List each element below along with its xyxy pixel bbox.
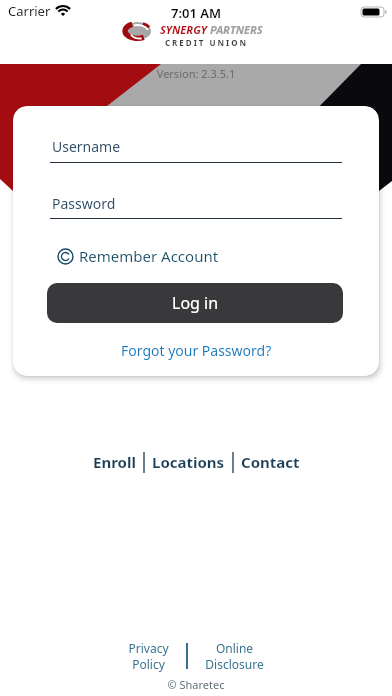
button[interactable]: Log in (47, 283, 343, 323)
button[interactable]: Privacy Policy (128, 640, 169, 673)
button[interactable]: Contact (241, 452, 300, 472)
button[interactable]: Locations (152, 452, 225, 472)
button[interactable]: Enroll (93, 452, 136, 472)
staticText: 7:01 AM (0, 4, 392, 22)
button[interactable]: Online Disclosure (205, 640, 264, 673)
button[interactable]: Forgot your Password? (121, 341, 272, 360)
staticText: CREDIT UNION (154, 37, 259, 48)
staticText: Password (52, 194, 116, 213)
staticText: Username (52, 137, 121, 156)
staticText: PARTNERS (210, 22, 263, 37)
staticText: SYNERGY (160, 22, 207, 37)
button[interactable]: Remember Account (57, 246, 219, 266)
staticText: Remember Account (79, 246, 219, 266)
staticText: © Sharetec (0, 677, 392, 692)
staticText: Carrier (8, 2, 51, 20)
staticText: Log in (172, 292, 219, 314)
staticText: Version: 2.3.5.1 (0, 66, 392, 81)
